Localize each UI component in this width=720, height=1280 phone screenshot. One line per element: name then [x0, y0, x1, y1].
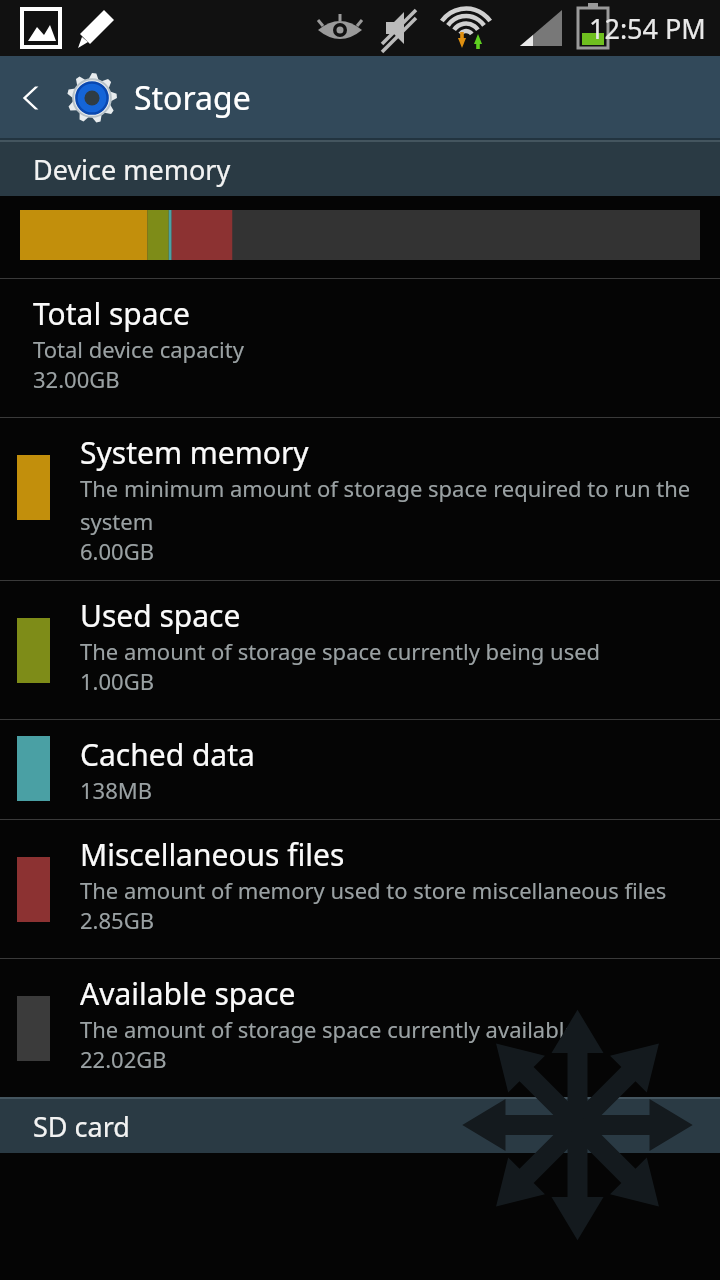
- staticText: Total device capacity: [33, 334, 244, 364]
- staticText: 32.00GB: [33, 364, 120, 394]
- staticText: System memory: [80, 432, 309, 473]
- staticText: The amount of memory used to store misce…: [80, 875, 667, 905]
- staticText: The minimum amount of storage space requ…: [80, 473, 700, 536]
- button[interactable]: Used space: [0, 581, 720, 719]
- button[interactable]: Total space: [0, 279, 720, 417]
- staticText: The amount of storage space currently av…: [80, 1014, 577, 1044]
- staticText: Total space: [33, 293, 190, 334]
- staticText: Miscellaneous files: [80, 834, 345, 875]
- staticText: Storage: [134, 76, 251, 120]
- staticText: 22.02GB: [80, 1044, 167, 1074]
- staticText: 138MB: [80, 775, 153, 805]
- staticText: SD card: [33, 1108, 130, 1145]
- staticText: Used space: [80, 595, 241, 636]
- button[interactable]: Cached data: [0, 720, 720, 819]
- staticText: The amount of storage space currently be…: [80, 636, 601, 666]
- button[interactable]: Available space: [0, 959, 720, 1097]
- button[interactable]: Miscellaneous files: [0, 820, 720, 958]
- button[interactable]: System memory: [0, 418, 720, 580]
- staticText: 6.00GB: [80, 536, 154, 566]
- staticText: 12:54 PM: [589, 10, 706, 47]
- staticText: Available space: [80, 973, 296, 1014]
- staticText: Cached data: [80, 734, 255, 775]
- staticText: Device memory: [33, 151, 231, 188]
- staticText: 1.00GB: [80, 666, 154, 696]
- button[interactable]: Navigate up: [0, 56, 66, 140]
- staticText: 2.85GB: [80, 905, 154, 935]
